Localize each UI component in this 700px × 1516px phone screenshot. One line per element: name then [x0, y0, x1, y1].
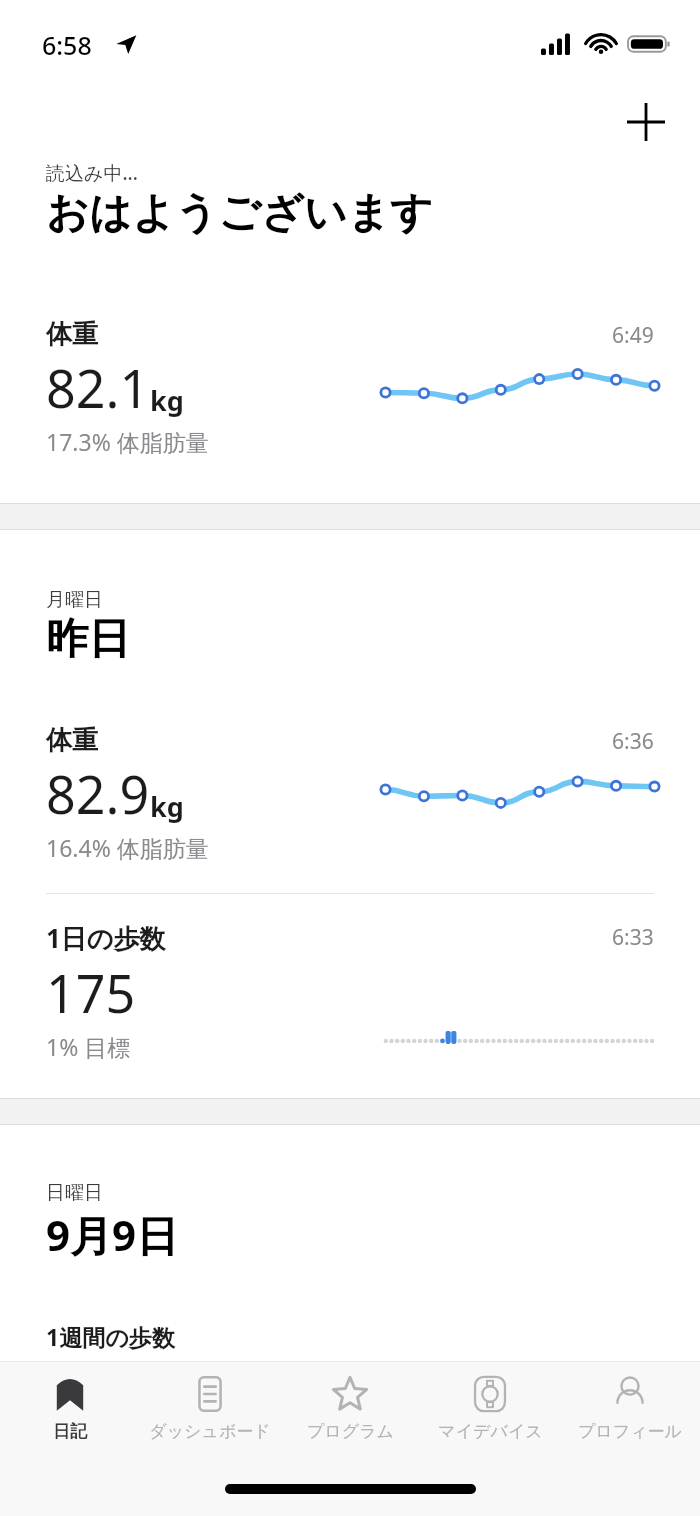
button[interactable]: マイデバイス — [420, 1362, 560, 1460]
staticText: 6:36 — [612, 727, 654, 756]
staticText: 82.9 — [46, 758, 150, 829]
staticText: 6:33 — [612, 923, 654, 952]
staticText: kg — [150, 382, 184, 419]
staticText: 6:49 — [612, 321, 654, 350]
staticText: 月曜日 — [46, 588, 103, 612]
staticText: マイデバイス — [438, 1421, 543, 1442]
button[interactable]: 1日の歩数 — [0, 920, 700, 1062]
staticText: 日曜日 — [46, 1181, 103, 1205]
button[interactable]: 体重 — [0, 318, 700, 457]
button[interactable]: Add entry — [618, 94, 674, 150]
staticText: 16.4% 体脂肪量 — [46, 832, 209, 863]
button[interactable]: ダッシュボード — [140, 1362, 280, 1460]
staticText: 読込み中... — [46, 160, 138, 186]
staticText: 9月9日 — [46, 1206, 179, 1263]
staticText: 6:58 — [42, 28, 92, 62]
staticText: 1% 目標 — [46, 1031, 131, 1062]
staticText: 日記 — [53, 1421, 87, 1442]
staticText: 175 — [46, 957, 136, 1028]
staticText: プログラム — [307, 1421, 394, 1442]
staticText: kg — [150, 788, 184, 825]
staticText: 1日の歩数 — [46, 920, 166, 956]
button[interactable]: プロフィール — [560, 1362, 700, 1460]
button[interactable]: プログラム — [280, 1362, 420, 1460]
staticText: 昨日 — [46, 613, 130, 666]
staticText: 体重 — [46, 318, 98, 351]
staticText: おはようございます — [46, 187, 433, 240]
button[interactable]: 日記 — [0, 1362, 140, 1460]
staticText: 17.3% 体脂肪量 — [46, 426, 209, 457]
staticText: 1週間の歩数 — [46, 1321, 175, 1352]
staticText: ダッシュボード — [149, 1421, 271, 1442]
button[interactable]: 体重 — [0, 724, 700, 863]
staticText: プロフィール — [578, 1421, 682, 1442]
staticText: 体重 — [46, 724, 98, 757]
staticText: 82.1 — [46, 352, 150, 423]
